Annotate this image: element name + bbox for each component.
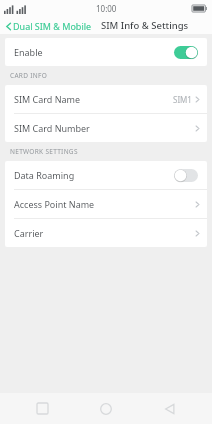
staticText: Carrier: [14, 227, 195, 239]
staticText: Enable: [14, 46, 174, 58]
staticText: Access Point Name: [14, 198, 195, 210]
staticText: CARD INFO: [10, 71, 48, 80]
button[interactable]: Off: [174, 169, 198, 182]
button[interactable]: Home: [84, 393, 128, 424]
staticText: 10:00: [96, 3, 117, 14]
button[interactable]: Recent apps: [20, 393, 64, 424]
staticText: SIM Info & Settings: [101, 19, 189, 32]
button[interactable]: Carrier: [5, 219, 207, 247]
button[interactable]: On: [174, 46, 198, 59]
button[interactable]: Back: [148, 393, 192, 424]
staticText: SIM Card Number: [14, 122, 195, 134]
button[interactable]: Data Roaming: [5, 161, 207, 189]
staticText: Data Roaming: [14, 169, 174, 181]
button[interactable]: SIM Card Name: [5, 85, 207, 113]
button[interactable]: Enable: [5, 38, 207, 66]
button[interactable]: Dual SIM & Mobile: [3, 19, 94, 33]
button[interactable]: SIM Card Number: [5, 114, 207, 142]
staticText: NETWORK SETTINGS: [10, 147, 78, 156]
staticText: SIM Card Name: [14, 93, 173, 105]
staticText: Dual SIM & Mobile: [13, 20, 92, 32]
button[interactable]: Access Point Name: [5, 190, 207, 218]
staticText: SIM1: [173, 94, 192, 105]
